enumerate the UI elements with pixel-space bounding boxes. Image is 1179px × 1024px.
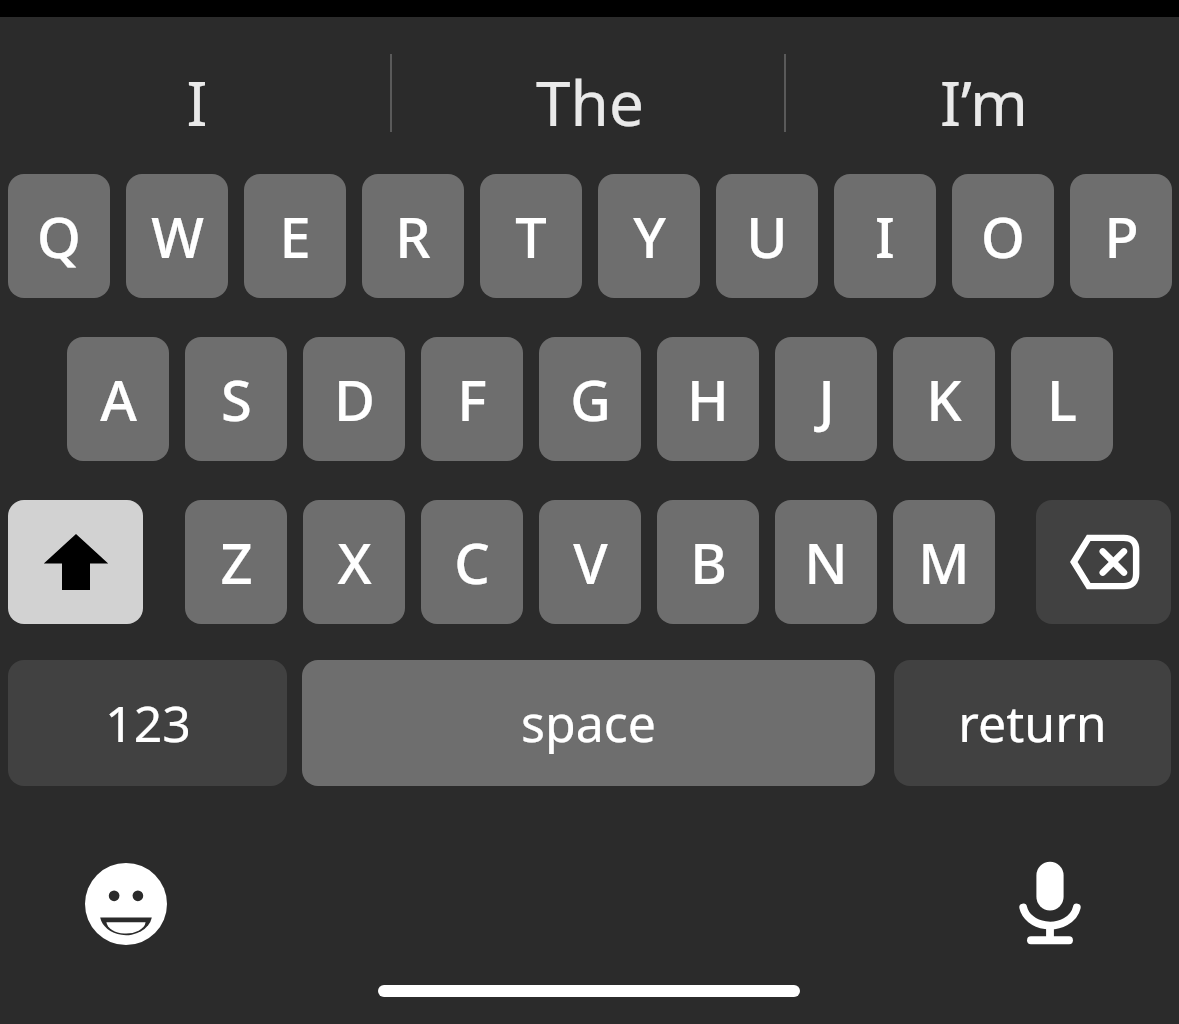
button[interactable]: Z	[185, 500, 287, 624]
staticText: T	[515, 198, 547, 274]
button[interactable]: P	[1070, 174, 1172, 298]
staticText: G	[570, 361, 611, 437]
staticText: P	[1104, 198, 1139, 274]
staticText: I	[875, 198, 895, 274]
button[interactable]: Y	[598, 174, 700, 298]
button[interactable]: G	[539, 337, 641, 461]
button[interactable]: T	[480, 174, 582, 298]
staticText: U	[746, 198, 788, 274]
button[interactable]: W	[126, 174, 228, 298]
button[interactable]: 123	[8, 660, 287, 786]
button[interactable]: D	[303, 337, 405, 461]
button[interactable]: J	[775, 337, 877, 461]
button[interactable]: K	[893, 337, 995, 461]
staticText: I’m	[940, 60, 1028, 128]
button[interactable]: R	[362, 174, 464, 298]
staticText: A	[100, 361, 137, 437]
button[interactable]: return	[894, 660, 1171, 786]
staticText: 123	[105, 689, 191, 757]
button[interactable]: H	[657, 337, 759, 461]
staticText: I	[186, 60, 208, 128]
button[interactable]: M	[893, 500, 995, 624]
button[interactable]: X	[303, 500, 405, 624]
button[interactable]: N	[775, 500, 877, 624]
button[interactable]: Q	[8, 174, 110, 298]
button[interactable]: I	[834, 174, 936, 298]
staticText: X	[337, 524, 372, 600]
staticText: space	[521, 689, 656, 757]
staticText: H	[687, 361, 729, 437]
button[interactable]: Shift	[8, 500, 143, 624]
button[interactable]: E	[244, 174, 346, 298]
staticText: B	[690, 524, 727, 600]
staticText: S	[221, 361, 252, 437]
button[interactable]: F	[421, 337, 523, 461]
button[interactable]: U	[716, 174, 818, 298]
staticText: J	[818, 361, 835, 437]
button[interactable]: The	[453, 60, 726, 128]
button[interactable]: A	[67, 337, 169, 461]
staticText: D	[334, 361, 375, 437]
button[interactable]: I	[60, 60, 333, 128]
staticText: C	[454, 524, 490, 600]
staticText: F	[457, 361, 487, 437]
staticText: E	[279, 198, 311, 274]
staticText: M	[918, 524, 970, 600]
button[interactable]: Backspace	[1036, 500, 1171, 624]
button[interactable]: Dictation	[990, 842, 1110, 962]
staticText: Y	[633, 198, 666, 274]
staticText: Q	[37, 198, 81, 274]
button[interactable]: O	[952, 174, 1054, 298]
button[interactable]: I’m	[847, 60, 1120, 128]
staticText: V	[573, 524, 608, 600]
staticText: The	[536, 60, 644, 128]
button[interactable]: V	[539, 500, 641, 624]
staticText: K	[926, 361, 962, 437]
button[interactable]: B	[657, 500, 759, 624]
staticText: Z	[220, 524, 253, 600]
staticText: L	[1047, 361, 1077, 437]
staticText: N	[804, 524, 848, 600]
staticText: W	[151, 198, 204, 274]
button[interactable]: C	[421, 500, 523, 624]
button[interactable]: space	[302, 660, 875, 786]
staticText: return	[958, 689, 1107, 757]
button[interactable]: Emoji	[66, 844, 186, 964]
button[interactable]: L	[1011, 337, 1113, 461]
button[interactable]: S	[185, 337, 287, 461]
staticText: O	[981, 198, 1025, 274]
staticText: R	[395, 198, 431, 274]
